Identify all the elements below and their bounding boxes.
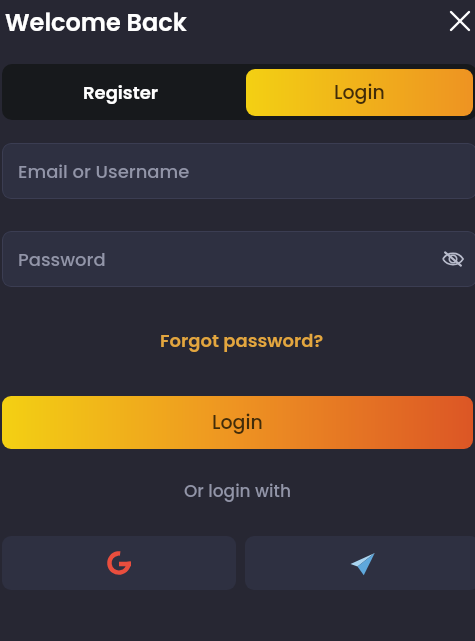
- staticText: Email or Username: [18, 159, 190, 184]
- staticText: Login: [334, 79, 385, 106]
- staticText: Forgot password?: [160, 328, 324, 353]
- staticText: Welcome Back: [5, 6, 187, 40]
- button[interactable]: Login: [2, 396, 473, 449]
- staticText: Register: [83, 80, 159, 105]
- button[interactable]: Register: [2, 64, 240, 120]
- button[interactable]: Password: [2, 231, 475, 287]
- staticText: Login: [212, 409, 263, 436]
- staticText: Or login with: [184, 479, 291, 503]
- staticText: Password: [18, 247, 106, 272]
- button[interactable]: Sign in with Telegram: [245, 536, 475, 590]
- button[interactable]: Email or Username: [2, 143, 475, 199]
- button[interactable]: Sign in with Google: [2, 536, 236, 590]
- button[interactable]: Login: [246, 69, 473, 116]
- button[interactable]: Show password: [437, 243, 469, 275]
- button[interactable]: Forgot password?: [148, 325, 335, 355]
- button[interactable]: Close: [442, 3, 475, 39]
